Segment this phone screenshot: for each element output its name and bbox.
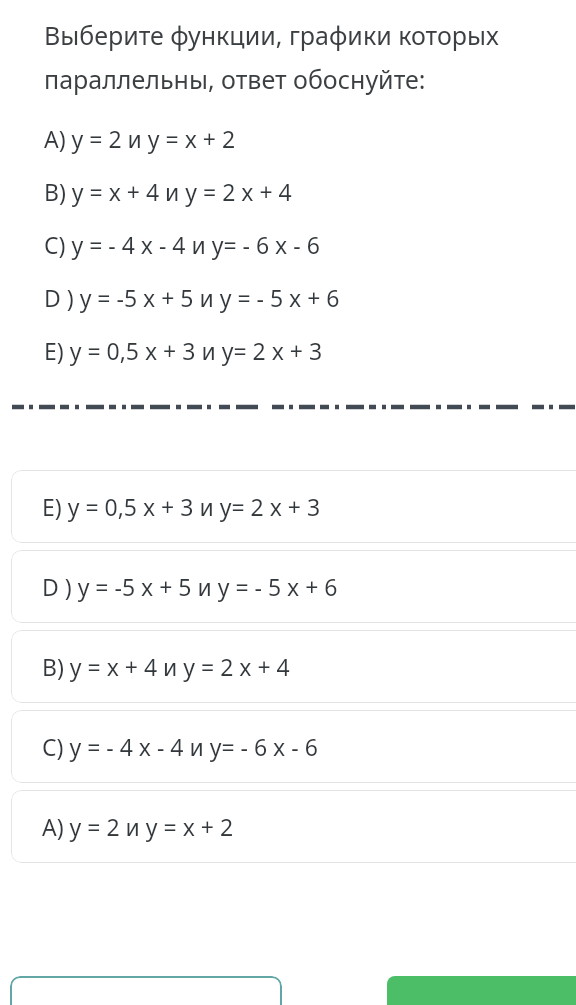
staticText: A) y = 2 и y = x + 2 (42, 811, 234, 842)
staticText: D ) y = -5 x + 5 и y = - 5 x + 6 (42, 571, 338, 602)
button[interactable]: E) y = 0,5 x + 3 и y= 2 x + 3 (11, 470, 576, 543)
staticText: D ) y = -5 x + 5 и y = - 5 x + 6 (44, 282, 340, 313)
button[interactable]: D ) y = -5 x + 5 и y = - 5 x + 6 (11, 550, 576, 623)
button[interactable]: C) y = - 4 x - 4 и y= - 6 x - 6 (11, 710, 576, 783)
staticText: A) y = 2 и y = x + 2 (44, 123, 236, 154)
button[interactable]: Ответить (387, 976, 576, 1005)
staticText: Выберите функции, графики которых паралл… (44, 18, 568, 96)
staticText: B) y = x + 4 и y = 2 x + 4 (44, 176, 292, 207)
staticText: E) y = 0,5 x + 3 и y= 2 x + 3 (44, 335, 323, 366)
button[interactable]: A) y = 2 и y = x + 2 (11, 790, 576, 863)
staticText: C) y = - 4 x - 4 и y= - 6 x - 6 (44, 229, 320, 260)
button[interactable]: B) y = x + 4 и y = 2 x + 4 (11, 630, 576, 703)
staticText: C) y = - 4 x - 4 и y= - 6 x - 6 (42, 731, 318, 762)
button[interactable]: Подсказка (10, 976, 282, 1005)
staticText: E) y = 0,5 x + 3 и y= 2 x + 3 (42, 491, 321, 522)
staticText: B) y = x + 4 и y = 2 x + 4 (42, 651, 290, 682)
